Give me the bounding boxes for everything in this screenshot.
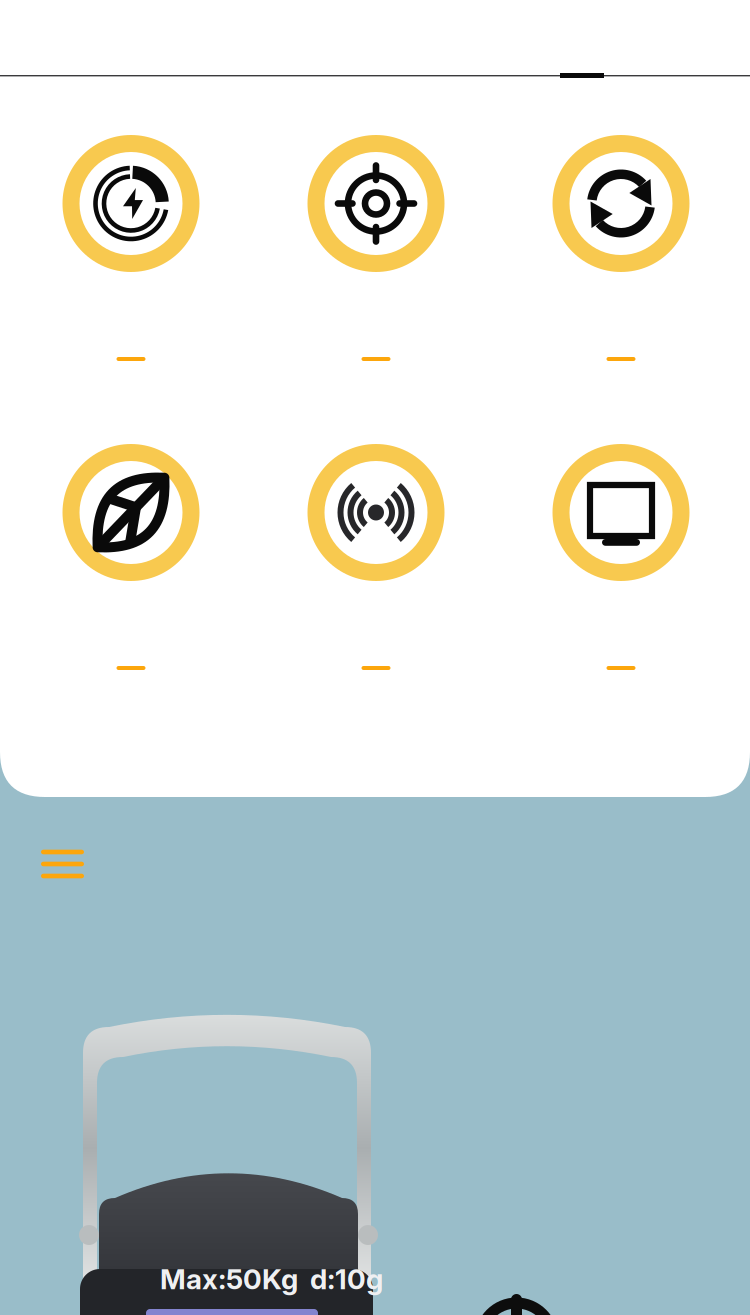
button[interactable]: High precision [292, 135, 460, 361]
button[interactable]: Fast charging [47, 135, 215, 361]
button[interactable]: Clear display [537, 444, 705, 670]
staticText: Max:50Kg d:10g [160, 1262, 383, 1296]
button[interactable]: Low power [47, 444, 215, 670]
button[interactable]: Wireless [292, 444, 460, 670]
button[interactable]: Auto zero [537, 135, 705, 361]
button[interactable]: Menu [27, 838, 98, 890]
